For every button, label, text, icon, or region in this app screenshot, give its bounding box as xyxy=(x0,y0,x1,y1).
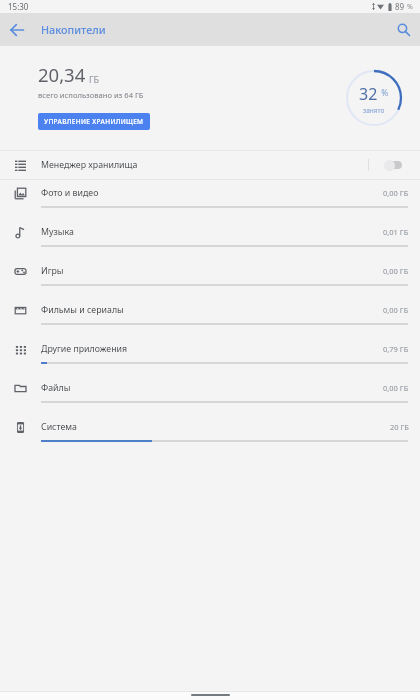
button[interactable]: Search xyxy=(387,13,420,46)
staticText: Файлы xyxy=(41,382,71,394)
button[interactable]: Другие приложения xyxy=(0,336,420,375)
staticText: Музыка xyxy=(41,226,74,238)
staticText: Фото и видео xyxy=(41,187,99,199)
button[interactable]: Фото и видео xyxy=(0,180,420,219)
button[interactable]: Менеджер хранилища xyxy=(0,151,420,179)
staticText: УПРАВЛЕНИЕ ХРАНИЛИЩЕМ xyxy=(44,117,144,126)
staticText: % xyxy=(407,2,413,12)
staticText: 0,79 ГБ xyxy=(383,344,409,354)
staticText: 20 ГБ xyxy=(390,422,409,432)
staticText: Игры xyxy=(41,265,64,277)
staticText: всего использовано из 64 ГБ xyxy=(38,90,144,100)
staticText: 89 xyxy=(395,1,405,12)
staticText: 0,01 ГБ xyxy=(383,227,409,237)
staticText: 20,34 xyxy=(38,62,86,87)
staticText: занято xyxy=(363,106,385,115)
staticText: Накопители xyxy=(41,22,106,37)
staticText: 0,00 ГБ xyxy=(383,266,409,276)
staticText: Другие приложения xyxy=(41,343,128,355)
staticText: 0,00 ГБ xyxy=(383,305,409,315)
staticText: Система xyxy=(41,421,77,433)
staticText: 0,00 ГБ xyxy=(383,383,409,393)
staticText: Фильмы и сериалы xyxy=(41,304,124,316)
staticText: Менеджер хранилища xyxy=(41,159,138,171)
button[interactable]: УПРАВЛЕНИЕ ХРАНИЛИЩЕМ xyxy=(38,113,150,130)
button[interactable]: Система xyxy=(0,414,420,453)
staticText: 15:30 xyxy=(8,1,29,12)
staticText: 0,00 ГБ xyxy=(383,188,409,198)
button[interactable]: Музыка xyxy=(0,219,420,258)
staticText: ГБ xyxy=(89,73,100,85)
button[interactable]: Файлы xyxy=(0,375,420,414)
button[interactable]: Back xyxy=(0,13,33,46)
button[interactable]: Игры xyxy=(0,258,420,297)
staticText: % xyxy=(379,87,389,99)
staticText: 32 xyxy=(359,83,378,105)
button[interactable]: Фильмы и сериалы xyxy=(0,297,420,336)
button[interactable]: Storage manager toggle xyxy=(384,159,402,171)
